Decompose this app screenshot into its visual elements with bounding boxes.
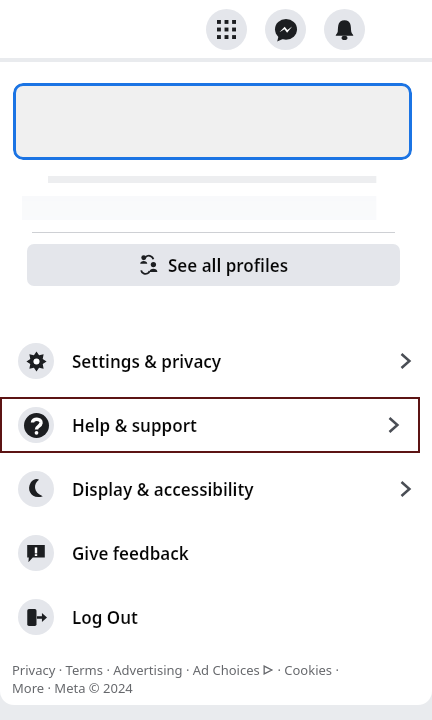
button[interactable]: Display & accessibility xyxy=(0,457,432,521)
button[interactable]: Messenger xyxy=(265,9,306,50)
button[interactable]: Give feedback xyxy=(0,521,432,585)
staticText: Settings & privacy xyxy=(72,350,394,373)
staticText: Give feedback xyxy=(72,542,416,565)
button[interactable]: Settings & privacy xyxy=(0,329,432,393)
staticText: Help & support xyxy=(72,414,382,437)
staticText: Privacy · Terms · Advertising · Ad Choic… xyxy=(12,661,260,679)
staticText: · Cookies · xyxy=(274,661,339,679)
button[interactable]: Help & support xyxy=(0,397,420,453)
staticText: See all profiles xyxy=(168,254,289,277)
staticText: Log Out xyxy=(72,606,416,629)
staticText: Display & accessibility xyxy=(72,478,394,501)
button[interactable]: See all profiles xyxy=(27,244,400,286)
button[interactable]: Notifications xyxy=(324,9,365,50)
button[interactable] xyxy=(13,83,412,160)
button[interactable]: Log Out xyxy=(0,585,432,649)
staticText: More · Meta © 2024 xyxy=(12,679,133,697)
button[interactable]: Menu xyxy=(206,9,247,50)
